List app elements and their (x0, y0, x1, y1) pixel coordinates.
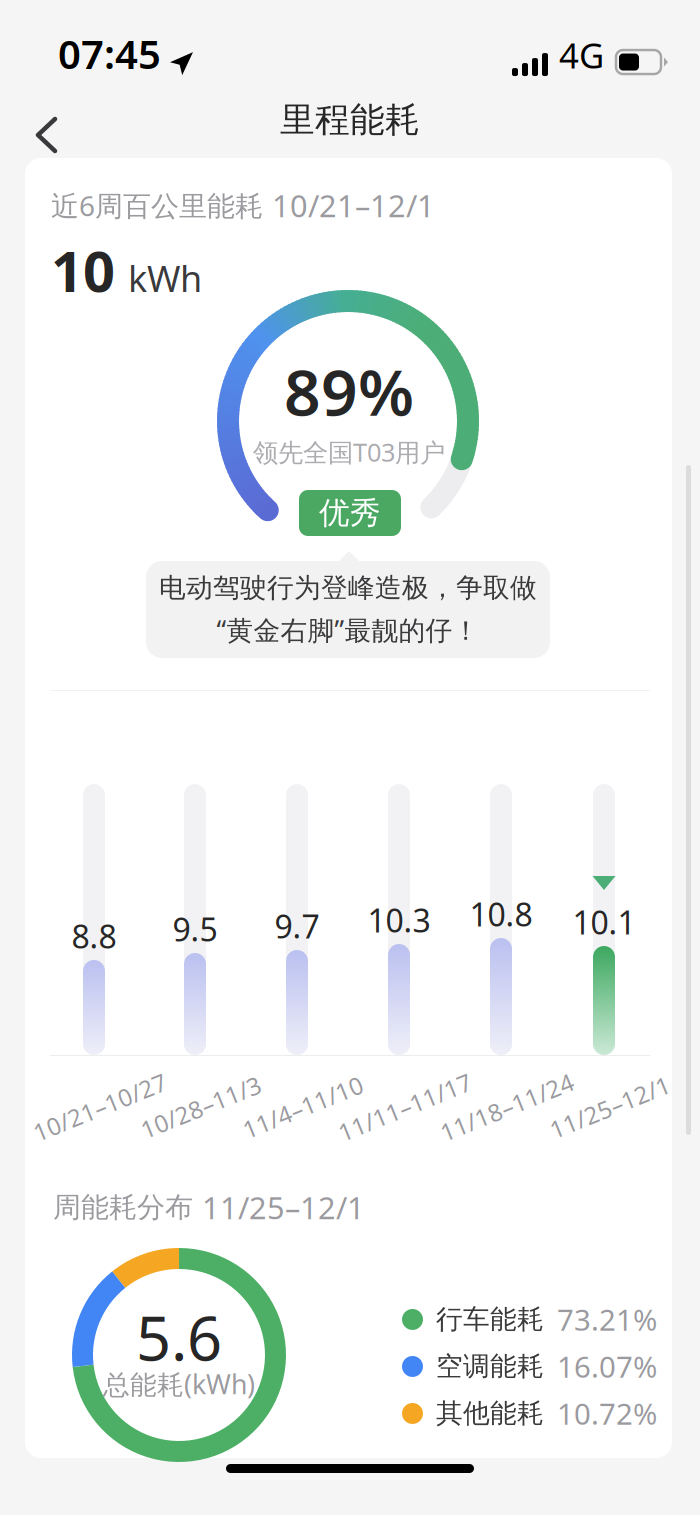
staticText: 11/11–11/17 (334, 1091, 476, 1123)
staticText: 空调能耗 (436, 1350, 544, 1383)
staticText: 10/21–10/27 (29, 1091, 171, 1123)
button[interactable]: 优秀 (299, 490, 401, 536)
staticText: 10/21–12/1 (272, 185, 435, 226)
staticText: 优秀 (319, 494, 381, 532)
staticText: kWh (128, 254, 202, 302)
staticText: 近6周百公里能耗 (51, 187, 263, 224)
staticText: 10.3 (367, 899, 430, 941)
staticText: 周能耗分布 (53, 1190, 193, 1225)
staticText: 73.21% (557, 1300, 657, 1339)
staticText: 10/28–11/3 (137, 1091, 265, 1123)
staticText: 11/25–12/1 (546, 1091, 674, 1123)
staticText: 89% (284, 348, 414, 433)
staticText: 10 (51, 233, 115, 307)
staticText: 领先全国T03用户 (253, 435, 445, 469)
staticText: 11/4–11/10 (239, 1091, 367, 1123)
staticText: 10.1 (572, 901, 635, 943)
staticText: 11/18–11/24 (436, 1091, 578, 1123)
staticText: 4G (559, 32, 604, 78)
staticText: 11/25–12/1 (202, 1187, 365, 1228)
button[interactable]: Back (10, 97, 83, 173)
staticText: 其他能耗 (436, 1397, 544, 1430)
staticText: 8.8 (71, 915, 116, 957)
staticText: “黄金右脚”最靓的仔！ (216, 612, 479, 648)
staticText: 总能耗(kWh) (103, 1366, 255, 1402)
staticText: 10.8 (469, 893, 532, 935)
staticText: 行车能耗 (436, 1303, 544, 1336)
staticText: 16.07% (557, 1347, 657, 1386)
staticText: 电动驾驶行为登峰造极，争取做 (159, 571, 537, 604)
staticText: 5.6 (136, 1296, 222, 1378)
staticText: 9.7 (274, 905, 319, 947)
staticText: 9.5 (172, 908, 217, 950)
staticText: 里程能耗 (280, 99, 420, 141)
staticText: 10.72% (557, 1394, 657, 1433)
staticText: 07:45 (58, 27, 161, 80)
